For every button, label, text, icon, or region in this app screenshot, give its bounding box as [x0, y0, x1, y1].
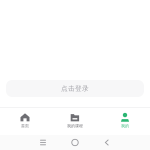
button[interactable]: Recents — [32, 135, 54, 150]
button[interactable]: Home — [64, 135, 86, 150]
staticText: 点击登录 — [61, 84, 89, 93]
staticText: 首页 — [21, 123, 29, 128]
button[interactable]: 我的 — [100, 109, 150, 133]
staticText: 我的课程 — [67, 123, 83, 128]
button[interactable]: 首页 — [0, 109, 50, 133]
button[interactable]: Back — [96, 135, 118, 150]
button[interactable]: 我的课程 — [50, 109, 100, 133]
button[interactable]: 点击登录 — [6, 80, 144, 97]
staticText: 我的 — [121, 123, 129, 128]
